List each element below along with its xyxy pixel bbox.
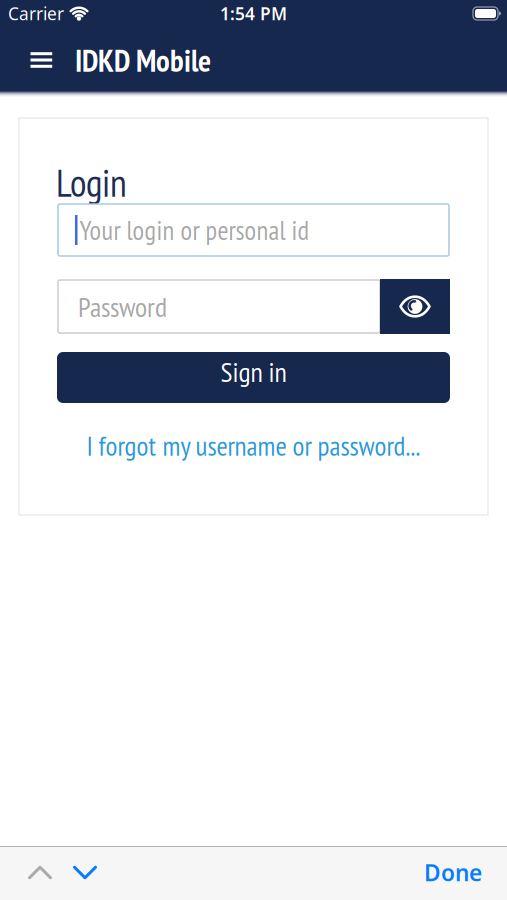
staticText: Your login or personal id — [79, 213, 309, 247]
button[interactable] — [52, 866, 97, 879]
button[interactable]: Password — [58, 280, 380, 333]
button[interactable]: Sign in — [57, 352, 450, 403]
button[interactable] — [0, 866, 52, 879]
staticText: Carrier — [8, 2, 64, 25]
staticText: Password — [78, 288, 167, 325]
staticText: I forgot my username or password... — [86, 428, 420, 463]
staticText: 1:54 PM — [220, 2, 287, 25]
staticText: Done — [424, 857, 482, 887]
staticText: IDKD Mobile — [75, 40, 211, 80]
button[interactable]: I forgot my username or password... — [58, 428, 449, 463]
button[interactable]: Done — [424, 857, 507, 887]
button[interactable] — [20, 42, 62, 78]
button[interactable]: Your login or personal id — [58, 204, 449, 256]
staticText: Login — [56, 158, 127, 207]
button[interactable] — [380, 279, 450, 334]
staticText: Sign in — [220, 353, 286, 390]
